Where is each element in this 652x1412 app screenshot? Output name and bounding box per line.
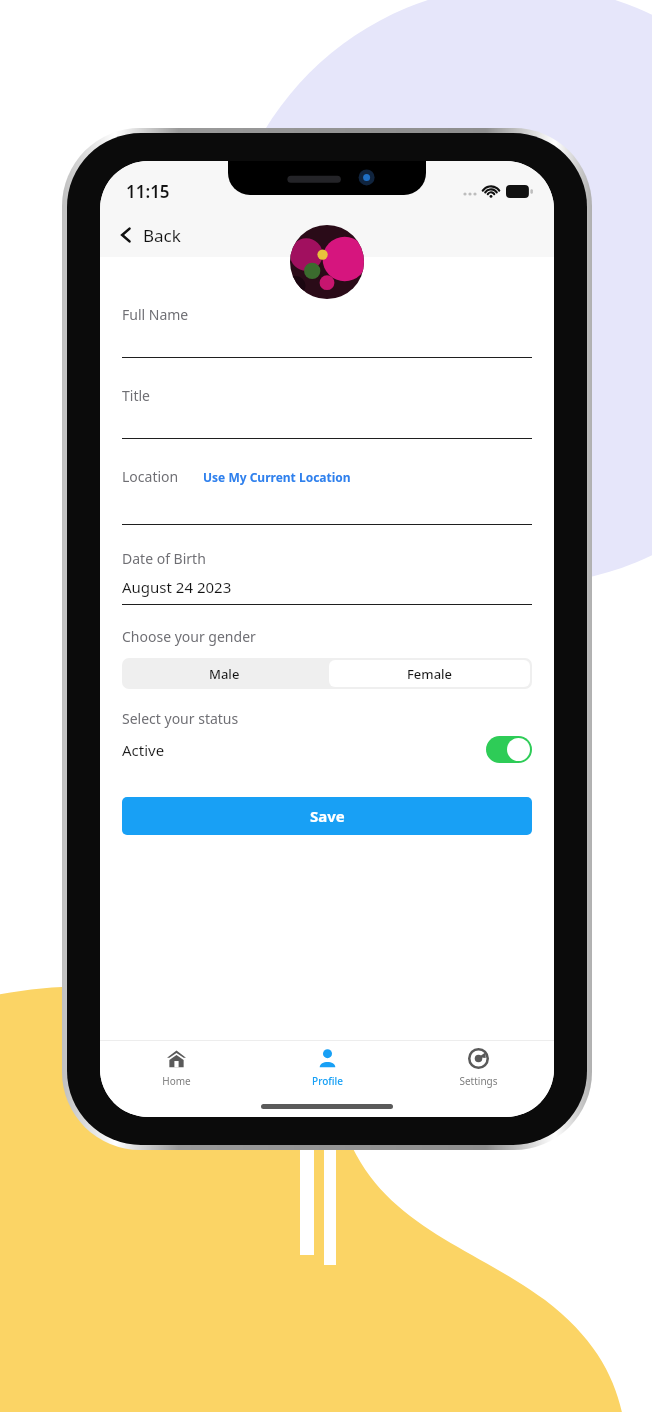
staticText: Use My Current Location (203, 469, 351, 485)
staticText: Title (122, 386, 150, 405)
staticText: Choose your gender (122, 627, 256, 646)
button[interactable]: Settings (403, 1041, 554, 1095)
staticText: August 24 2023 (122, 577, 232, 597)
button[interactable]: Title (122, 386, 532, 439)
staticText: Settings (459, 1074, 498, 1088)
staticText: Home (162, 1074, 191, 1088)
staticText: Full Name (122, 305, 189, 324)
button[interactable]: Home (100, 1041, 252, 1095)
staticText: Profile (312, 1074, 343, 1088)
button[interactable]: Full Name (122, 305, 532, 358)
staticText: Location (122, 467, 179, 486)
staticText: 11:15 (126, 180, 170, 203)
staticText: Male (209, 665, 240, 683)
staticText: Female (407, 665, 453, 683)
staticText: Select your status (122, 709, 239, 728)
button[interactable]: Active status toggle (486, 736, 532, 763)
button[interactable]: Date of Birth (122, 549, 532, 605)
staticText: Active (122, 740, 165, 760)
button[interactable]: Male (122, 658, 327, 689)
button[interactable]: Profile (252, 1041, 403, 1095)
button[interactable]: Back (100, 213, 554, 257)
button[interactable]: Use My Current Location (203, 469, 351, 485)
button[interactable]: Save (122, 797, 532, 835)
staticText: Date of Birth (122, 549, 206, 568)
staticText: Save (310, 806, 345, 826)
staticText: Back (143, 224, 181, 247)
button[interactable]: Female (329, 660, 530, 687)
